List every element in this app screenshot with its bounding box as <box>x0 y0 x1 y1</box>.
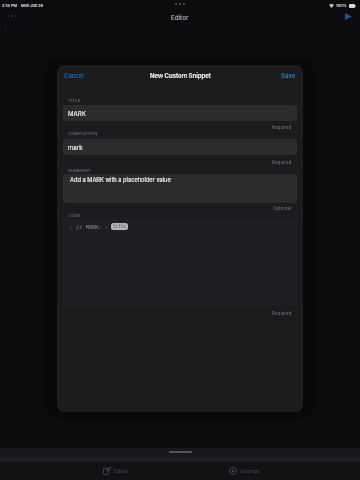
staticText: TITLE <box>68 98 81 103</box>
staticText: mark <box>68 144 83 151</box>
staticText: Required <box>272 311 292 317</box>
staticText: // MARK: - <box>76 224 109 230</box>
staticText: Optional <box>273 206 292 212</box>
button[interactable]: More <box>7 15 17 17</box>
staticText: Add a MARK with a placeholder value <box>70 176 171 183</box>
staticText: Editor <box>114 468 128 474</box>
staticText: Cancel <box>64 72 84 79</box>
staticText: SUMMARY <box>68 168 92 173</box>
button[interactable]: Add a MARK with a placeholder value <box>63 174 297 203</box>
button[interactable]: Settings <box>229 467 260 475</box>
button[interactable]: Run <box>344 12 353 21</box>
button[interactable]: mark <box>63 139 297 155</box>
staticText: Settings <box>240 468 260 474</box>
staticText: New Custom Snippet <box>150 72 211 79</box>
staticText: 3:14 PM <box>2 3 18 8</box>
staticText: title <box>113 224 126 229</box>
button[interactable]: Multitasking <box>175 3 185 5</box>
staticText: MARK <box>68 110 86 117</box>
button[interactable]: Editor <box>103 467 128 475</box>
button[interactable]: 1 <box>63 219 297 305</box>
staticText: 1 <box>4 26 8 32</box>
staticText: 1 <box>69 224 73 230</box>
staticText: 100% <box>336 3 347 8</box>
staticText: Required <box>272 125 292 131</box>
button[interactable]: Save <box>274 69 303 82</box>
button[interactable]: Cancel <box>57 69 91 82</box>
staticText: Editor <box>171 14 189 22</box>
staticText: CODE <box>68 213 81 218</box>
staticText: Mon Jun 26 <box>21 3 44 8</box>
staticText: Required <box>272 160 292 166</box>
staticText: Save <box>281 72 296 79</box>
button[interactable]: MARK <box>63 105 297 121</box>
staticText: COMPLETION <box>68 131 98 136</box>
